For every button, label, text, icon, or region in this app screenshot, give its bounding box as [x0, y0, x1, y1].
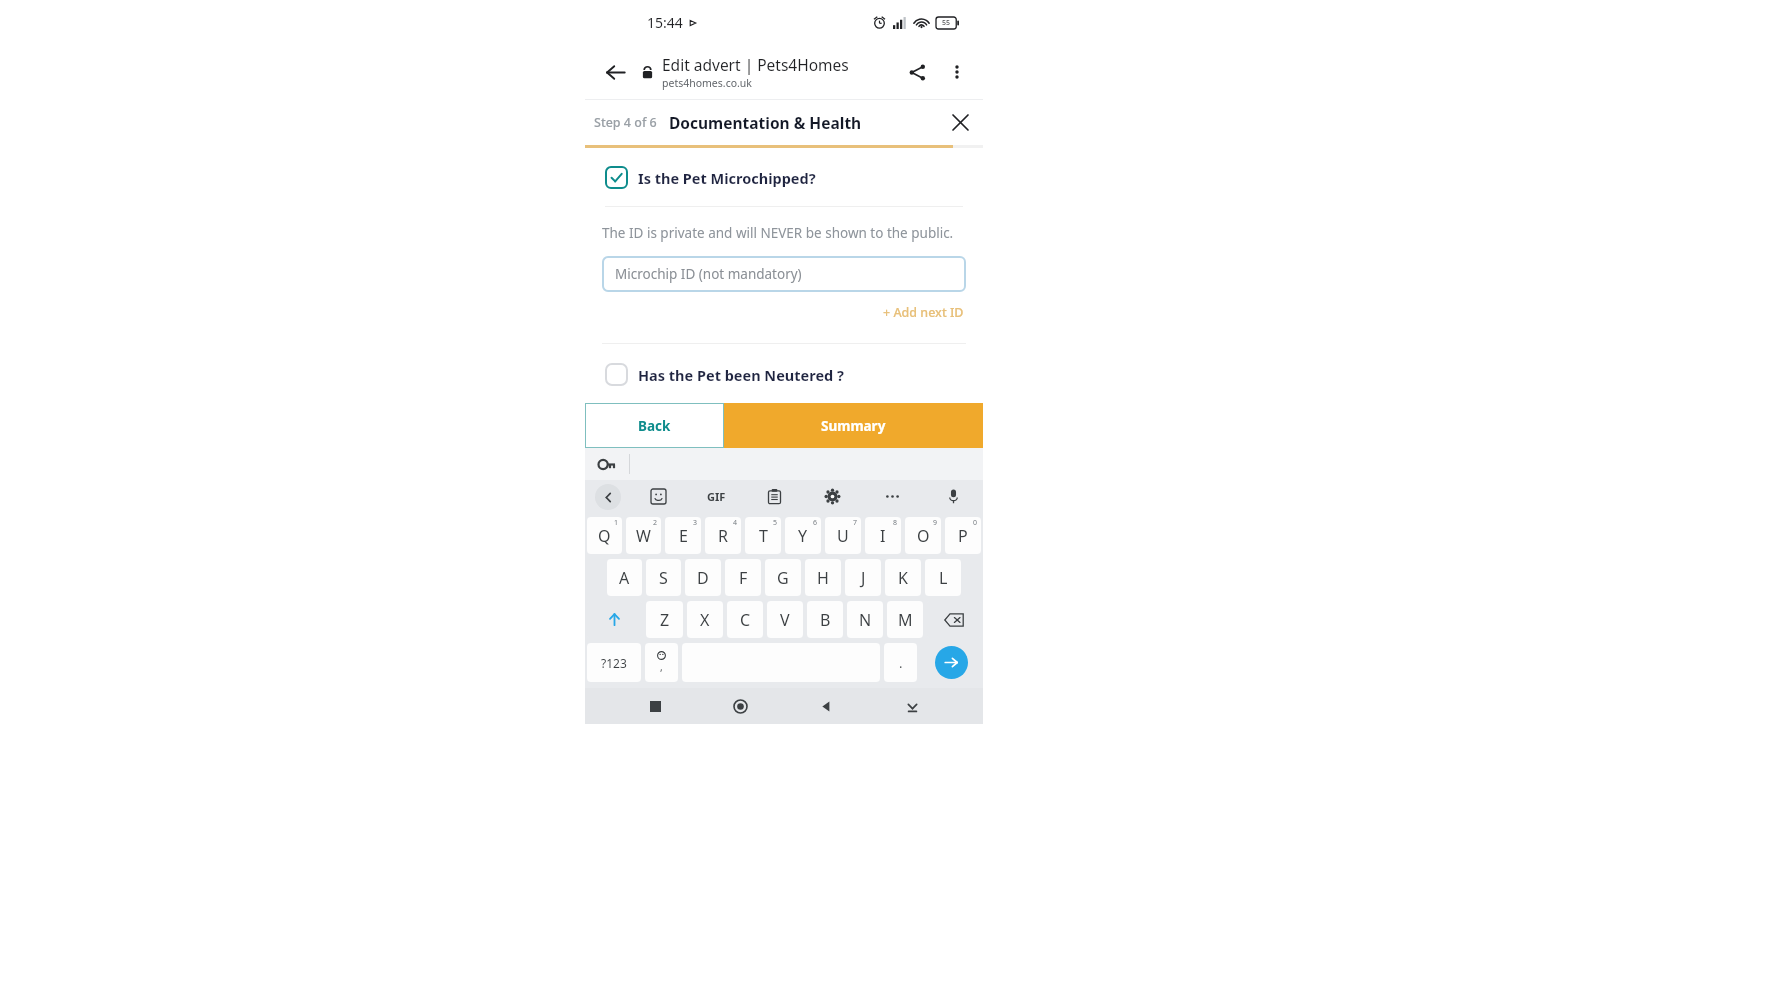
staticText: O — [917, 525, 930, 547]
button[interactable]: W — [626, 517, 661, 554]
button[interactable]: Back — [811, 691, 841, 721]
staticText: Edit advert | Pets4Homes — [662, 54, 849, 75]
button[interactable]: Has the Pet been Neutered ? — [597, 363, 971, 386]
staticText: J — [861, 567, 866, 589]
staticText: 4 — [733, 518, 738, 528]
staticText: The ID is private and will NEVER be show… — [602, 224, 954, 242]
button[interactable]: Keyboard tool — [745, 480, 803, 513]
button[interactable]: Y — [785, 517, 821, 554]
button[interactable]: S — [646, 559, 681, 596]
button[interactable]: Keyboard tool — [630, 480, 687, 513]
staticText: C — [740, 609, 751, 631]
staticText: U — [837, 525, 849, 547]
staticText: 3 — [693, 518, 698, 528]
staticText: H — [817, 567, 829, 589]
button[interactable]: I — [865, 517, 901, 554]
button[interactable]: F — [725, 559, 761, 596]
button[interactable]: Keyboard tool — [923, 480, 983, 513]
button[interactable]: U — [825, 517, 861, 554]
button[interactable]: R — [705, 517, 741, 554]
button[interactable]: Keyboard tool — [803, 480, 861, 513]
button[interactable]: P — [945, 517, 981, 554]
staticText: E — [679, 525, 688, 547]
staticText: 7 — [853, 518, 858, 528]
staticText: . — [899, 654, 903, 672]
button[interactable]: Edit advert | Pets4Homes — [662, 54, 897, 90]
staticText: A — [619, 567, 630, 589]
staticText: T — [759, 525, 768, 547]
staticText: Is the Pet Microchipped? — [638, 168, 816, 188]
button[interactable]: More options — [937, 52, 977, 92]
staticText: 8 — [893, 518, 898, 528]
button[interactable]: Is the Pet Microchipped? — [597, 166, 971, 189]
button[interactable]: H — [805, 559, 841, 596]
staticText: X — [700, 609, 710, 631]
button[interactable]: K — [885, 559, 921, 596]
button[interactable]: Z — [646, 601, 683, 638]
button[interactable]: ?123 — [587, 643, 641, 682]
staticText: Documentation & Health — [669, 112, 862, 133]
button[interactable]: Password — [585, 448, 629, 480]
staticText: Summary — [821, 417, 886, 435]
button[interactable]: Keyboard tool — [687, 480, 745, 513]
staticText: Q — [598, 525, 611, 547]
button[interactable]: Recents — [640, 691, 670, 721]
staticText: GIF — [707, 489, 726, 504]
staticText: 1 — [614, 518, 619, 528]
button[interactable]: Keyboard tool — [585, 480, 630, 513]
button[interactable]: Enter — [935, 646, 968, 679]
staticText: G — [777, 567, 789, 589]
button[interactable]: X — [687, 601, 723, 638]
staticText: ?123 — [601, 655, 627, 671]
staticText: 55 — [942, 18, 951, 28]
button[interactable]: L — [925, 559, 961, 596]
button[interactable]: Share — [897, 52, 937, 92]
button[interactable]: A — [607, 559, 642, 596]
button[interactable]: O — [905, 517, 941, 554]
button[interactable]: Keyboard tool — [861, 480, 923, 513]
staticText: 2 — [653, 518, 658, 528]
staticText: 5 — [773, 518, 778, 528]
button[interactable]: Backspace — [927, 601, 981, 638]
button[interactable]: J — [845, 559, 881, 596]
button[interactable]: Close — [941, 103, 979, 141]
button[interactable]: Back — [585, 403, 724, 448]
staticText: Y — [798, 525, 808, 547]
staticText: + Add next ID — [883, 304, 964, 321]
button[interactable]: Home — [725, 691, 755, 721]
staticText: Z — [660, 609, 670, 631]
button[interactable]: B — [807, 601, 843, 638]
staticText: K — [898, 567, 908, 589]
button[interactable]: Summary — [724, 403, 983, 448]
button[interactable]: C — [727, 601, 763, 638]
button[interactable]: V — [767, 601, 803, 638]
staticText: Back — [638, 417, 671, 435]
button[interactable]: . — [884, 643, 917, 682]
staticText: Microchip ID (not mandatory) — [615, 265, 802, 283]
button[interactable]: Q — [587, 517, 622, 554]
staticText: S — [659, 567, 668, 589]
staticText: B — [820, 609, 831, 631]
button[interactable]: D — [685, 559, 721, 596]
button[interactable]: Microchip ID (not mandatory) — [602, 256, 966, 292]
staticText: R — [718, 525, 728, 547]
button[interactable]: + Add next ID — [881, 302, 966, 323]
staticText: M — [898, 609, 913, 631]
button[interactable]: N — [847, 601, 883, 638]
staticText: , — [660, 660, 663, 674]
staticText: N — [859, 609, 872, 631]
button[interactable]: T — [745, 517, 781, 554]
button[interactable]: M — [887, 601, 923, 638]
staticText: Has the Pet been Neutered ? — [638, 365, 844, 385]
staticText: D — [697, 567, 709, 589]
button[interactable]: G — [765, 559, 801, 596]
staticText: 0 — [973, 518, 978, 528]
button[interactable]: Hide keyboard — [897, 691, 927, 721]
button[interactable]: Shift — [587, 601, 642, 638]
button[interactable]: Emoji — [645, 643, 678, 682]
staticText: 15:44 — [647, 13, 683, 32]
staticText: P — [958, 525, 968, 547]
button[interactable]: Back — [595, 52, 635, 92]
button[interactable]: E — [665, 517, 701, 554]
